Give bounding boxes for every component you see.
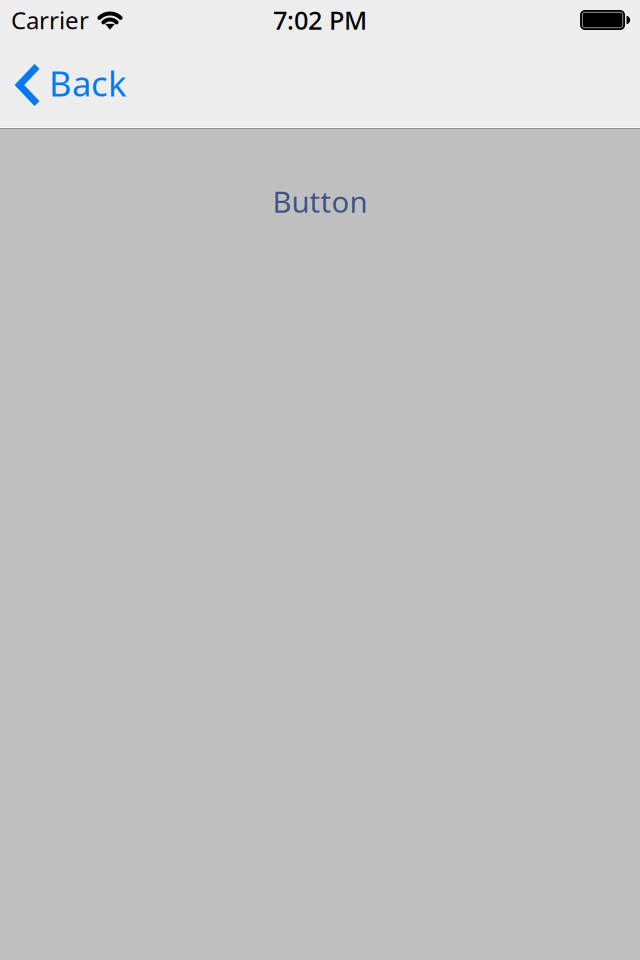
staticText: Back [49,60,127,106]
staticText: 7:02 PM [273,3,367,37]
staticText: Button [272,182,367,221]
button[interactable]: Button [258,170,381,233]
staticText: Carrier [11,4,89,36]
button[interactable]: Back [0,40,145,127]
